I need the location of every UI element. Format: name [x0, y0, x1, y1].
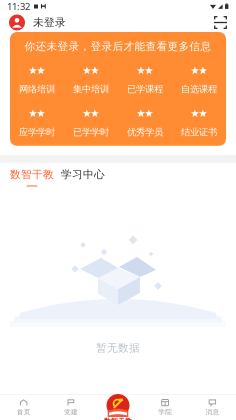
staticText: 数智干教 [104, 417, 132, 420]
button[interactable]: 消息 [189, 399, 236, 416]
staticText: 网络培训 [19, 83, 55, 95]
button[interactable]: 集中培训 [64, 66, 118, 95]
staticText: 数智干教 [10, 168, 54, 181]
staticText: 学习中心 [61, 168, 105, 181]
staticText: 已学课程 [127, 83, 163, 95]
staticText: 已学学时 [73, 126, 109, 138]
button[interactable]: 数智干教 [10, 168, 54, 187]
button[interactable]: 已学课程 [118, 66, 172, 95]
staticText: 自选课程 [181, 83, 217, 95]
staticText: 你还未登录，登录后才能查看更多信息 [24, 40, 211, 53]
staticText: 暂无数据 [96, 341, 140, 354]
staticText: 优秀学员 [127, 126, 163, 138]
staticText: 应学学时 [19, 126, 55, 138]
button[interactable]: 自选课程 [172, 66, 226, 95]
staticText: 党建 [64, 408, 78, 416]
button[interactable]: 优秀学员 [118, 109, 172, 138]
staticText: 消息 [205, 408, 219, 416]
staticText: 学院 [158, 408, 172, 416]
button[interactable]: 结业证书 [172, 109, 226, 138]
button[interactable]: 已学学时 [64, 109, 118, 138]
staticText: 结业证书 [181, 126, 217, 138]
button[interactable]: Scan QR code [214, 16, 227, 29]
button[interactable]: 网络培训 [10, 66, 64, 95]
button[interactable]: 学院 [141, 399, 189, 416]
button[interactable]: 应学学时 [10, 109, 64, 138]
button[interactable]: 学习中心 [61, 168, 105, 187]
staticText: 未登录 [33, 16, 66, 29]
button[interactable]: 党建 [47, 399, 94, 416]
button[interactable]: 你还未登录，登录后才能查看更多信息 [10, 40, 226, 53]
staticText: 11:32 [7, 0, 30, 13]
staticText: 集中培训 [73, 83, 109, 95]
button[interactable]: 数智干教 [0, 394, 236, 420]
staticText: 首页 [17, 408, 31, 416]
button[interactable]: 首页 [0, 399, 47, 416]
